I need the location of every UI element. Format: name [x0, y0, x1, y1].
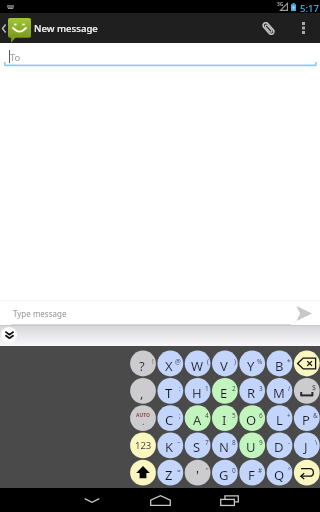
button[interactable]: ,	[130, 378, 156, 404]
button[interactable]: Type message	[0, 300, 320, 325]
button[interactable]: Z	[157, 460, 183, 486]
button[interactable]: X	[157, 351, 183, 377]
staticText: /	[288, 384, 291, 393]
staticText: E	[220, 384, 228, 402]
button[interactable]: 123	[130, 432, 156, 458]
staticText: P	[302, 411, 310, 429]
button[interactable]: V	[212, 351, 238, 377]
staticText: .	[142, 415, 145, 427]
button[interactable]: S	[185, 432, 211, 458]
staticText: N	[219, 438, 229, 456]
staticText: 1	[205, 384, 209, 393]
button[interactable]: U	[239, 432, 265, 458]
staticText: O	[246, 411, 257, 429]
button[interactable]: Attach	[253, 13, 284, 43]
button[interactable]: P	[294, 405, 320, 431]
button[interactable]: N	[212, 432, 238, 458]
staticText: ~	[177, 438, 181, 447]
staticText: )	[234, 357, 236, 366]
staticText: T	[165, 384, 173, 402]
staticText: @	[175, 357, 181, 366]
button[interactable]: T	[157, 378, 183, 404]
staticText: R	[247, 384, 256, 402]
button[interactable]: Q	[267, 460, 293, 486]
staticText: ;	[179, 411, 181, 420]
staticText: 5	[232, 411, 236, 420]
button[interactable]: '	[185, 460, 211, 486]
staticText: %	[257, 357, 263, 366]
staticText: V	[220, 357, 228, 375]
staticText: New message	[34, 22, 98, 35]
staticText: AUTO	[136, 412, 150, 419]
staticText: Z	[165, 466, 173, 484]
button[interactable]: A	[185, 405, 211, 431]
button[interactable]: J	[294, 432, 320, 458]
staticText: +	[287, 411, 291, 420]
staticText: I	[222, 411, 227, 429]
button[interactable]: Home	[134, 487, 186, 512]
staticText: F	[248, 466, 255, 484]
staticText: 3G	[277, 1, 284, 8]
button[interactable]: G	[212, 460, 238, 486]
button[interactable]: I	[212, 405, 238, 431]
staticText: Y	[247, 357, 255, 375]
button[interactable]: Auto correct	[130, 405, 156, 431]
staticText: *	[287, 357, 291, 366]
staticText: (	[207, 357, 209, 366]
button[interactable]: O	[239, 405, 265, 431]
button[interactable]: Enter	[294, 460, 320, 486]
staticText: -	[288, 438, 291, 447]
staticText: L	[276, 411, 283, 429]
staticText: 0	[232, 466, 236, 475]
staticText: 2	[232, 384, 236, 393]
button[interactable]: B	[267, 351, 293, 377]
button[interactable]: ?	[130, 351, 156, 377]
staticText: 9	[259, 438, 263, 447]
button[interactable]: H	[185, 378, 211, 404]
button[interactable]: Navigate up	[0, 13, 320, 43]
staticText: #	[258, 466, 263, 475]
staticText: C	[165, 411, 174, 429]
staticText: 4	[205, 411, 209, 420]
button[interactable]: M	[267, 378, 293, 404]
button[interactable]: Recent apps	[203, 487, 255, 512]
button[interactable]: R	[239, 378, 265, 404]
staticText: &	[313, 411, 318, 420]
button[interactable]: Send	[291, 303, 317, 323]
staticText: '	[196, 466, 199, 484]
staticText: S	[193, 438, 201, 456]
button[interactable]: F	[239, 460, 265, 486]
button[interactable]: L	[267, 405, 293, 431]
button[interactable]: More options	[292, 13, 314, 43]
staticText: A	[193, 411, 202, 429]
button[interactable]: Hide keyboard	[66, 487, 118, 512]
button[interactable]: Shift	[130, 460, 156, 486]
staticText: W	[191, 357, 204, 375]
button[interactable]: Y	[239, 351, 265, 377]
button[interactable]: Hide keyboard	[1, 327, 17, 343]
staticText: H	[192, 384, 202, 402]
button[interactable]: K	[157, 432, 183, 458]
other: Navigate up	[2, 24, 6, 33]
staticText: $	[312, 383, 317, 393]
staticText: ?	[139, 357, 145, 375]
button[interactable]: E	[212, 378, 238, 404]
staticText: 5:17	[300, 2, 319, 15]
staticText: G	[219, 466, 229, 484]
button[interactable]: D	[267, 432, 293, 458]
button[interactable]: C	[157, 405, 183, 431]
staticText: "	[206, 466, 209, 475]
button[interactable]: To	[0, 43, 320, 69]
button[interactable]: Backspace	[294, 351, 320, 377]
staticText: D	[274, 438, 284, 456]
staticText: X	[165, 357, 173, 375]
button[interactable]: W	[185, 351, 211, 377]
staticText: 123	[135, 439, 152, 452]
staticText: !	[152, 357, 154, 366]
staticText: Type message	[13, 308, 67, 319]
staticText: M	[273, 384, 285, 402]
staticText: \	[315, 438, 318, 447]
staticText: K	[165, 438, 174, 456]
button[interactable]: Space	[294, 378, 320, 404]
staticText: °	[288, 466, 291, 475]
